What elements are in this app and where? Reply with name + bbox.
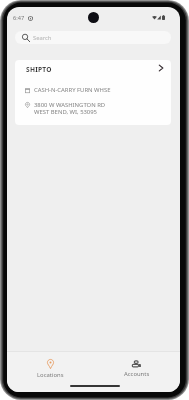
button[interactable]: Accounts xyxy=(93,352,180,381)
staticText: Search xyxy=(33,34,52,42)
staticText: WEST BEND, WI, 53095 xyxy=(34,108,97,116)
staticText: SHIPTO xyxy=(26,65,52,74)
staticText: 6:47 xyxy=(13,14,25,22)
staticText: 3800 W WASHINGTON RD xyxy=(34,101,106,109)
button[interactable]: Locations xyxy=(7,352,93,381)
staticText: Accounts xyxy=(124,370,150,378)
button[interactable]: SHIPTO xyxy=(15,60,171,79)
other: Open ship to xyxy=(158,64,164,72)
staticText: Locations xyxy=(37,371,64,379)
staticText: CASH-N-CARRY FURN WHSE xyxy=(34,86,111,94)
button[interactable]: Search xyxy=(15,31,171,44)
